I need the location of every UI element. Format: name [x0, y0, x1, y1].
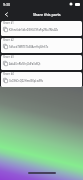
button[interactable]: Share #3	[1, 55, 82, 70]
staticText: Share #2	[3, 38, 14, 42]
button[interactable]: Share #4	[1, 72, 82, 87]
staticText: 3xC8hDcQ02Hmd3KpLw9Rv	[9, 79, 44, 83]
staticText: Share #3	[3, 55, 14, 59]
staticText: Share #4	[3, 72, 14, 76]
button[interactable]: Back	[1, 9, 11, 19]
staticText: Adu4UnRb5KnJ2dFaXs8Qt	[9, 62, 41, 66]
button[interactable]: Share #2	[1, 38, 82, 53]
staticText: 5dfucd7W87E7b38AerHq3Vn6Tz	[9, 45, 49, 49]
button[interactable]: Share #1	[1, 21, 82, 36]
staticText: 9:30	[3, 2, 10, 7]
staticText: K3hnc6dn5dkrD3HGC9FaPq2Wu7Ms4Zb	[9, 28, 59, 32]
staticText: Share #1	[3, 21, 14, 25]
staticText: Share this parts	[33, 12, 61, 17]
